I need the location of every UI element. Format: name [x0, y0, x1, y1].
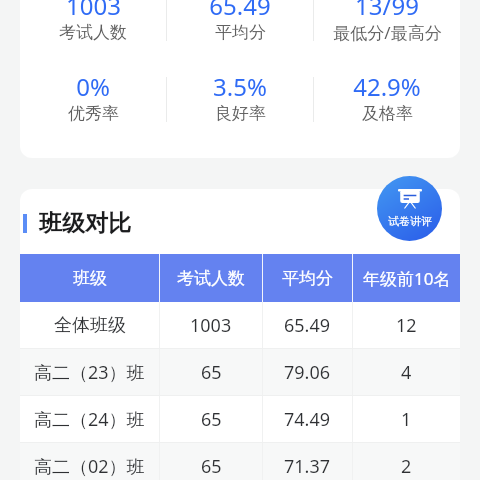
- staticText: 65.49: [284, 313, 331, 338]
- button[interactable]: 试卷讲评: [377, 176, 442, 241]
- staticText: 13/99: [355, 0, 419, 22]
- staticText: 全体班级: [54, 314, 126, 337]
- staticText: 65.49: [209, 0, 271, 22]
- staticText: 及格率: [362, 103, 413, 124]
- staticText: 79.06: [284, 360, 331, 385]
- staticText: 1003: [190, 313, 232, 338]
- staticText: 71.37: [284, 454, 331, 479]
- staticText: 0%: [76, 70, 110, 103]
- staticText: 12: [396, 313, 417, 338]
- staticText: 考试人数: [177, 268, 245, 289]
- button[interactable]: 1003: [20, 0, 166, 52]
- staticText: 班级: [73, 268, 107, 289]
- staticText: 平均分: [282, 268, 333, 289]
- staticText: 试卷讲评: [388, 214, 432, 228]
- staticText: 65: [201, 454, 222, 479]
- staticText: 65: [201, 360, 222, 385]
- staticText: 4: [401, 360, 412, 385]
- staticText: 优秀率: [68, 103, 119, 124]
- staticText: 平均分: [215, 22, 266, 43]
- staticText: 高二（24）班: [34, 407, 145, 432]
- staticText: 65: [201, 407, 222, 432]
- button[interactable]: 42.9%: [314, 69, 460, 133]
- staticText: 2: [401, 454, 412, 479]
- staticText: 高二（02）班: [34, 454, 145, 479]
- staticText: 1: [401, 407, 412, 432]
- staticText: 1003: [66, 0, 121, 22]
- staticText: 最低分/最高分: [333, 21, 442, 44]
- staticText: 74.49: [284, 407, 331, 432]
- button[interactable]: 0%: [20, 69, 166, 133]
- staticText: 年级前10名: [363, 267, 451, 290]
- button[interactable]: 全体班级: [20, 302, 460, 349]
- staticText: 42.9%: [353, 70, 421, 103]
- staticText: 3.5%: [213, 70, 267, 103]
- button[interactable]: 65.49: [167, 0, 313, 52]
- button[interactable]: 高二（02）班: [20, 443, 460, 480]
- staticText: 班级对比: [39, 209, 131, 238]
- button[interactable]: 高二（23）班: [20, 349, 460, 396]
- staticText: 高二（23）班: [34, 360, 145, 385]
- staticText: 良好率: [215, 103, 266, 124]
- button[interactable]: 高二（24）班: [20, 396, 460, 443]
- staticText: 考试人数: [59, 22, 127, 43]
- button[interactable]: 13/99: [314, 0, 460, 52]
- button[interactable]: 3.5%: [167, 69, 313, 133]
